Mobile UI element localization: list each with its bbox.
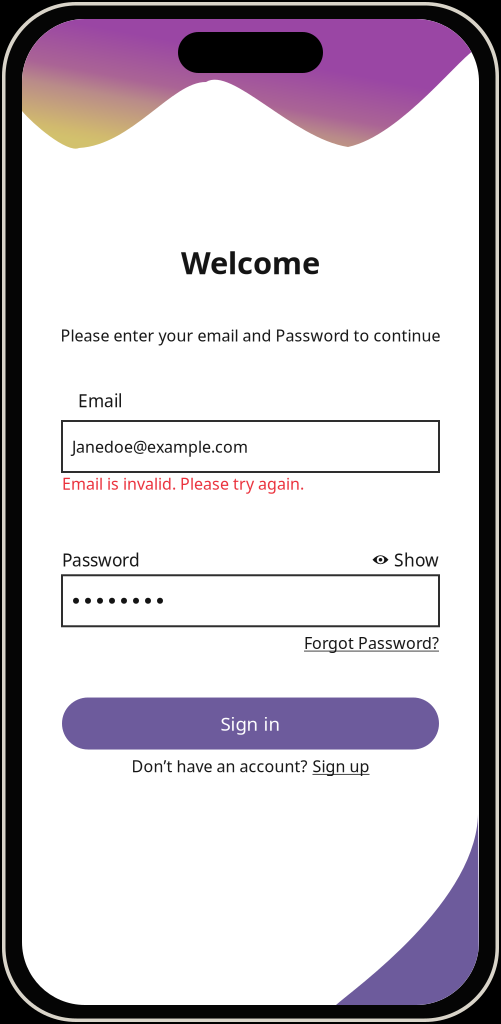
staticText: Don’t have an account? bbox=[131, 755, 307, 777]
staticText: Forgot Password? bbox=[304, 632, 439, 653]
button[interactable]: Sign in bbox=[62, 697, 439, 749]
staticText: Welcome bbox=[181, 242, 320, 283]
staticText: Show bbox=[394, 548, 439, 571]
staticText: Please enter your email and Password to … bbox=[60, 325, 440, 346]
staticText: Email bbox=[78, 389, 122, 412]
staticText: Password bbox=[62, 548, 140, 571]
button[interactable]: Show bbox=[372, 548, 439, 571]
staticText: Sign up bbox=[312, 755, 369, 777]
button[interactable]: Sign up bbox=[312, 755, 369, 777]
staticText: Email is invalid. Please try again. bbox=[62, 473, 304, 494]
staticText: Janedoe@example.com bbox=[72, 436, 248, 457]
button[interactable]: Forgot Password? bbox=[304, 632, 439, 653]
staticText: Sign in bbox=[220, 711, 280, 736]
